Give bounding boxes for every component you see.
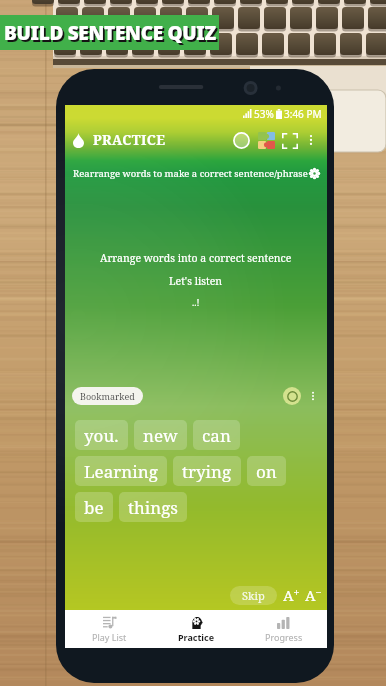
button[interactable]: Fullscreen — [279, 130, 300, 151]
staticText: things — [128, 496, 178, 519]
staticText: new — [143, 424, 178, 447]
button[interactable]: Settings — [308, 165, 320, 181]
button[interactable]: More options — [302, 131, 320, 149]
staticText: A⁺ — [283, 585, 300, 605]
button[interactable]: be — [75, 492, 113, 522]
button[interactable]: Puzzle mode — [256, 130, 277, 151]
button[interactable]: Bookmarked — [72, 387, 143, 405]
staticText: ..! — [192, 296, 200, 308]
button[interactable]: Decrease font size — [304, 585, 323, 605]
button[interactable]: on — [247, 456, 286, 486]
staticText: Practice — [178, 631, 215, 643]
button[interactable]: Play List — [65, 610, 153, 648]
button[interactable]: you. — [75, 420, 128, 450]
staticText: trying — [182, 460, 232, 483]
staticText: you. — [84, 424, 119, 447]
button[interactable]: new — [134, 420, 187, 450]
button[interactable]: can — [193, 420, 240, 450]
button[interactable]: Increase font size — [282, 585, 301, 605]
staticText: 53% — [254, 107, 274, 121]
staticText: Play List — [92, 631, 127, 643]
staticText: can — [202, 424, 231, 447]
button[interactable]: Skip — [230, 586, 277, 605]
staticText: BUILD SENTENCE QUIZ — [6, 22, 218, 48]
staticText: BUILD SENTENCE QUIZ — [4, 20, 216, 46]
staticText: A⁻ — [305, 585, 322, 605]
staticText: Rearrange words to make a correct senten… — [73, 167, 308, 180]
staticText: be — [84, 496, 104, 519]
staticText: 3:46 PM — [284, 107, 322, 121]
staticText: PRACTICE — [93, 131, 166, 149]
staticText: Skip — [242, 588, 265, 603]
button[interactable]: Progress — [240, 610, 327, 648]
button[interactable]: things — [119, 492, 187, 522]
staticText: Progress — [265, 631, 303, 643]
button[interactable]: More options — [306, 389, 320, 403]
staticText: on — [256, 460, 277, 483]
staticText: Bookmarked — [80, 390, 135, 402]
staticText: Let's listen — [169, 274, 223, 288]
staticText: Arrange words into a correct sentence — [100, 251, 292, 265]
button[interactable]: Practice — [153, 610, 240, 648]
button[interactable]: Record — [231, 130, 251, 150]
button[interactable]: Replay — [283, 387, 301, 405]
button[interactable]: Learning — [75, 456, 167, 486]
button[interactable]: trying — [173, 456, 241, 486]
staticText: Learning — [84, 460, 158, 483]
